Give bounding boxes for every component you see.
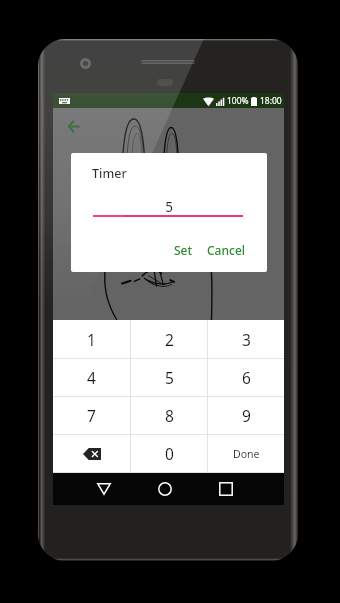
staticText: 5 xyxy=(165,367,174,388)
button[interactable]: Back xyxy=(60,113,86,139)
staticText: 9 xyxy=(242,405,251,426)
button[interactable]: 1 xyxy=(53,320,130,358)
button[interactable]: 0 xyxy=(131,435,207,472)
staticText: 4 xyxy=(87,367,96,388)
staticText: 8 xyxy=(165,405,174,426)
button[interactable]: Recents xyxy=(213,476,239,502)
button[interactable]: 2 xyxy=(131,320,207,358)
staticText: 1 xyxy=(87,329,96,350)
staticText: 7 xyxy=(87,405,96,426)
staticText: 5 xyxy=(93,198,245,216)
staticText: 18:00 xyxy=(260,95,282,107)
staticText: Timer xyxy=(92,165,127,182)
button[interactable]: 7 xyxy=(53,397,130,434)
staticText: Done xyxy=(233,447,260,461)
button[interactable]: Delete xyxy=(53,435,130,472)
staticText: Cancel xyxy=(207,242,246,258)
button[interactable]: Set xyxy=(167,237,200,263)
button[interactable]: Back xyxy=(91,476,117,502)
staticText: 3 xyxy=(242,329,251,350)
staticText: 100% xyxy=(227,95,249,107)
button[interactable]: 5 xyxy=(131,359,207,396)
button[interactable]: 6 xyxy=(208,359,284,396)
button[interactable]: Home xyxy=(152,476,178,502)
staticText: 6 xyxy=(242,367,251,388)
button[interactable]: 9 xyxy=(208,397,284,434)
button[interactable]: 4 xyxy=(53,359,130,396)
button[interactable]: Cancel xyxy=(200,237,253,263)
button[interactable]: Done xyxy=(208,435,284,472)
staticText: 2 xyxy=(165,329,174,350)
staticText: 0 xyxy=(165,443,174,464)
button[interactable]: 3 xyxy=(208,320,284,358)
staticText: Set xyxy=(174,242,193,258)
button[interactable]: 8 xyxy=(131,397,207,434)
